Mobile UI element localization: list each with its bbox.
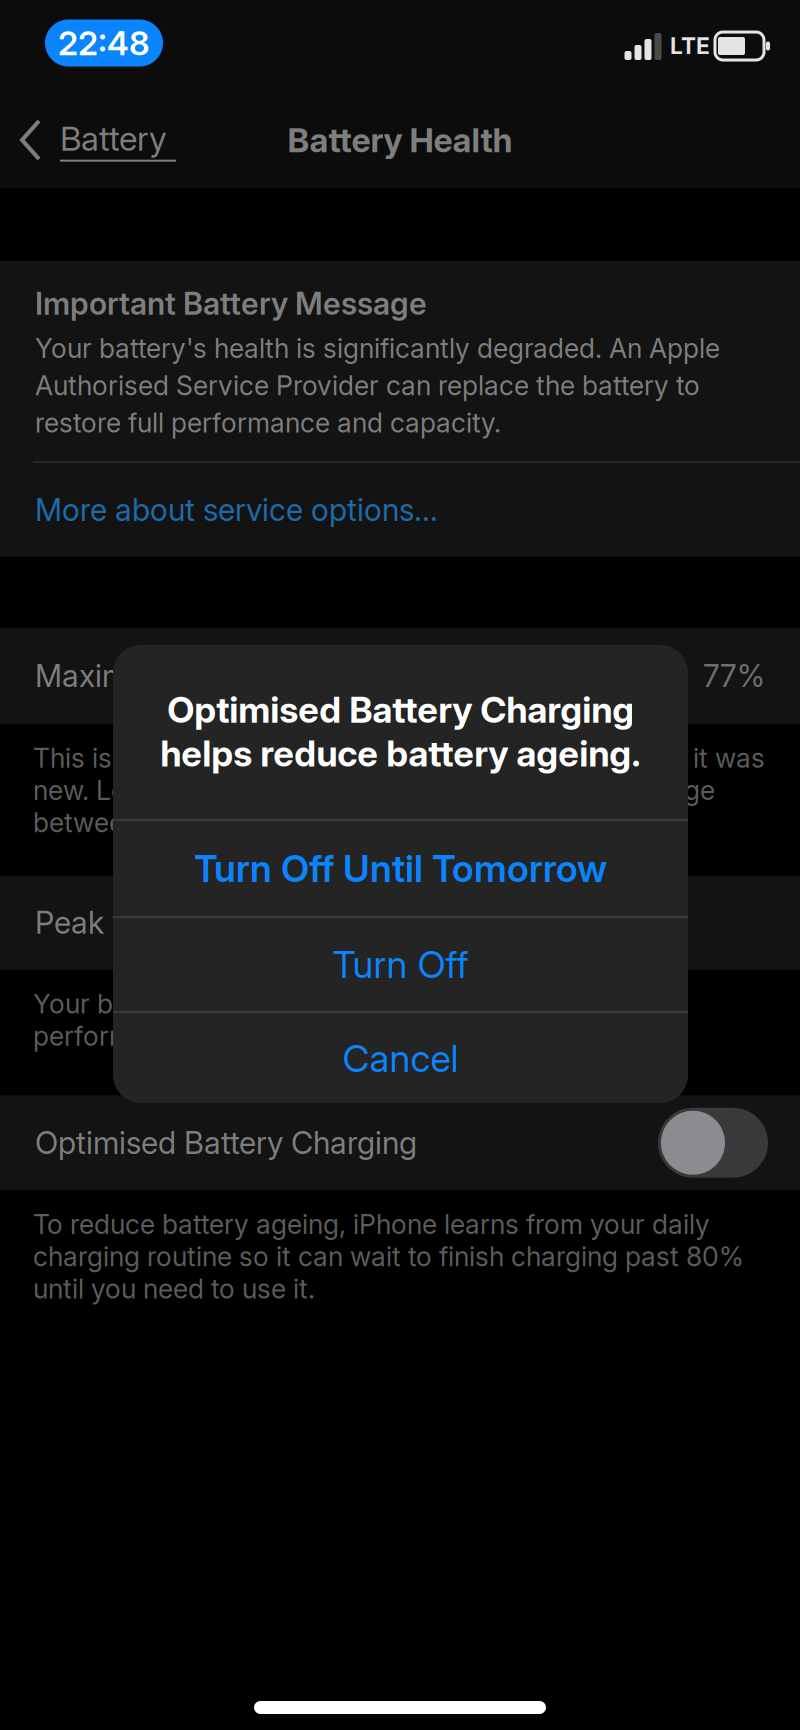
staticText: More about service options... (35, 491, 438, 528)
staticText: Turn Off Until Tomorrow (194, 846, 607, 891)
staticText: Maximum Battery Capacity (35, 657, 411, 694)
button[interactable]: More about service options... (0, 463, 800, 557)
staticText: Peak Performance Capability (35, 904, 440, 941)
staticText: 22:48 (58, 23, 150, 63)
button[interactable]: Battery (0, 92, 188, 188)
staticText: Your battery is currently supporting nor… (33, 988, 626, 1052)
staticText: Battery Health (287, 120, 512, 160)
staticText: This is a measure of battery capacity re… (33, 742, 765, 839)
button[interactable]: Turn Off Until Tomorrow (113, 821, 688, 916)
staticText: LTE (670, 32, 710, 60)
staticText: Optimised Battery Charging helps reduce … (160, 688, 641, 775)
staticText: Turn Off (332, 942, 468, 987)
button[interactable] (658, 1108, 768, 1178)
staticText: 77% (703, 657, 765, 694)
staticText: To reduce battery ageing, iPhone learns … (33, 1208, 744, 1305)
staticText: Battery (60, 118, 167, 159)
staticText: Important Battery Message (35, 285, 427, 322)
button[interactable]: Turn Off (113, 918, 688, 1011)
staticText: Optimised Battery Charging (35, 1124, 417, 1161)
staticText: Your battery's health is significantly d… (35, 332, 720, 439)
staticText: Cancel (342, 1036, 458, 1081)
button[interactable]: Cancel (113, 1013, 688, 1104)
